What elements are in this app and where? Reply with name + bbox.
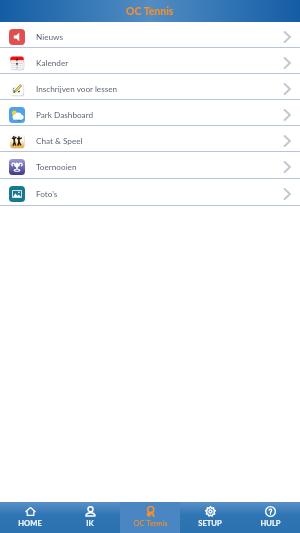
staticText: HOME xyxy=(18,518,42,527)
other: Ik xyxy=(85,506,96,517)
staticText: Foto's xyxy=(36,189,58,199)
staticText: HULP xyxy=(260,518,281,527)
button[interactable]: Ik xyxy=(60,502,120,533)
button[interactable]: Setup xyxy=(180,502,240,533)
other: OC Tennis xyxy=(145,506,156,517)
button[interactable]: Foto's xyxy=(0,179,300,206)
button[interactable]: Nieuws xyxy=(0,22,300,48)
staticText: Inschrijven voor lessen xyxy=(36,84,118,94)
button[interactable]: Inschrijven voor lessen xyxy=(0,74,300,100)
button[interactable]: Hulp xyxy=(240,502,300,533)
staticText: Toernooien xyxy=(36,162,77,172)
staticText: Nieuws xyxy=(36,32,63,42)
staticText: OC Tennis xyxy=(126,5,174,18)
button[interactable]: Chat & Speel xyxy=(0,126,300,152)
other: Setup xyxy=(205,506,216,517)
staticText: Kalender xyxy=(36,58,69,68)
staticText: IK xyxy=(86,518,94,527)
button[interactable]: OC Tennis xyxy=(120,502,180,533)
button[interactable]: Toernooien xyxy=(0,152,300,179)
button[interactable]: Park Dashboard xyxy=(0,100,300,126)
staticText: Chat & Speel xyxy=(36,136,83,146)
other: Hulp xyxy=(265,506,276,517)
button[interactable]: Kalender xyxy=(0,48,300,74)
button[interactable]: Home xyxy=(0,502,60,533)
staticText: OC Tennis xyxy=(133,518,168,527)
staticText: Park Dashboard xyxy=(36,110,94,120)
other: Home xyxy=(25,506,36,517)
staticText: SETUP xyxy=(198,518,222,527)
